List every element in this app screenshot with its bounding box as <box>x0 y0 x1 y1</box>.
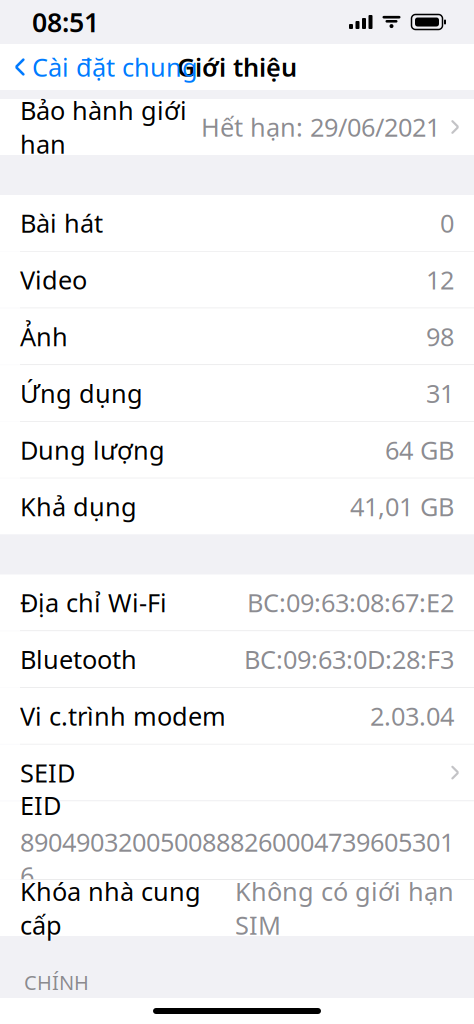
staticText: BC:09:63:08:67:E2 <box>247 586 454 619</box>
button[interactable]: SEID <box>0 745 474 801</box>
staticText: Không có giới hạn SIM <box>235 874 454 942</box>
staticText: Ứng dụng <box>20 376 143 410</box>
staticText: Cài đặt chung <box>32 50 198 84</box>
staticText: CHÍNH <box>24 969 89 996</box>
staticText: Địa chỉ Wi-Fi <box>20 586 167 619</box>
staticText: EID <box>20 788 61 822</box>
staticText: Vi c.trình modem <box>20 699 226 733</box>
staticText: Hết hạn: 29/06/2021 <box>201 110 440 144</box>
staticText: 41,01 GB <box>350 490 454 523</box>
staticText: 2.03.04 <box>370 699 454 733</box>
staticText: Dung lượng <box>20 433 165 467</box>
staticText: Khóa nhà cung cấp <box>20 874 201 942</box>
staticText: SEID <box>20 756 75 789</box>
staticText: 64 GB <box>385 433 454 467</box>
staticText: BC:09:63:0D:28:F3 <box>244 642 454 676</box>
staticText: Khả dụng <box>20 490 137 523</box>
button[interactable]: Cài đặt chung <box>0 44 208 90</box>
button[interactable]: Bảo hành giới hạn <box>0 99 474 155</box>
staticText: 12 <box>426 263 454 296</box>
staticText: Video <box>20 263 87 296</box>
staticText: Bluetooth <box>20 642 137 676</box>
staticText: Ảnh <box>20 320 68 353</box>
staticText: 89049032005008882600047396053016 <box>20 825 454 892</box>
staticText: 08:51 <box>32 4 99 40</box>
staticText: Bài hát <box>20 206 103 240</box>
staticText: 0 <box>440 206 454 240</box>
staticText: 31 <box>426 376 454 410</box>
staticText: Giới thiệu <box>177 50 297 84</box>
staticText: Bảo hành giới hạn <box>20 93 187 161</box>
staticText: 98 <box>426 320 454 353</box>
